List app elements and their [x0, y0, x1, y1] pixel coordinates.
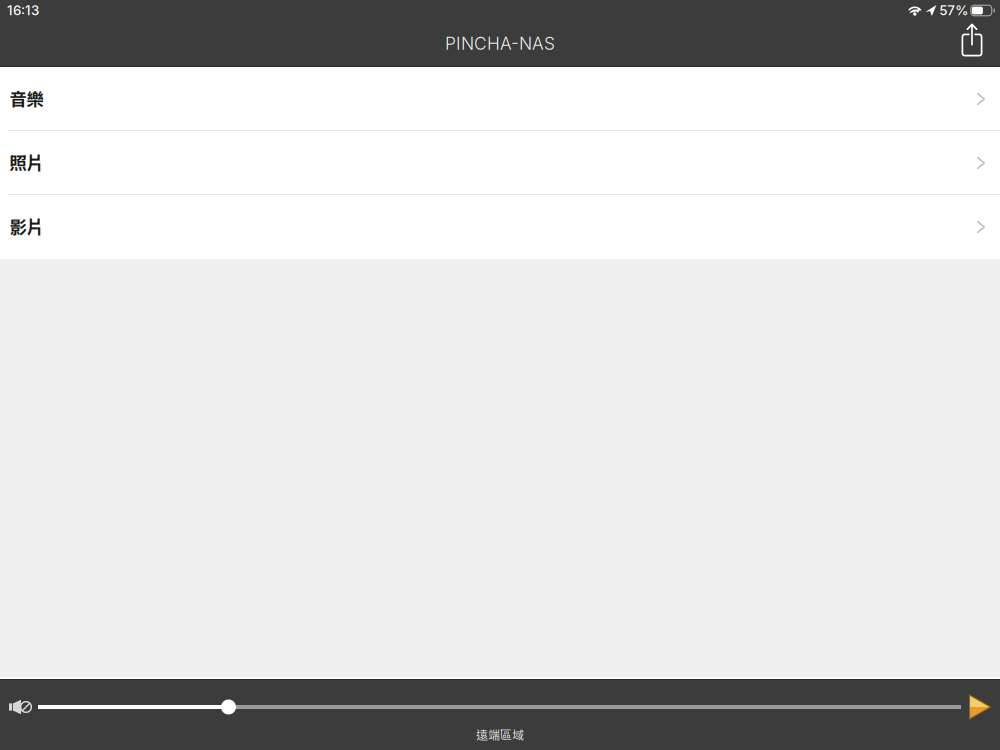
button[interactable]: Send — [964, 691, 996, 723]
button[interactable]: Share — [950, 21, 994, 66]
staticText: 16:13 — [7, 2, 39, 18]
staticText: 音樂 — [9, 85, 43, 111]
button[interactable]: Mute — [9, 699, 32, 715]
staticText: PINCHA-NAS — [445, 33, 555, 54]
staticText: 影片 — [9, 213, 43, 239]
button[interactable]: 照片 — [0, 131, 1000, 195]
staticText: 照片 — [9, 149, 43, 175]
button[interactable]: 音樂 — [0, 67, 1000, 131]
staticText: 57% — [939, 2, 968, 18]
button[interactable]: 影片 — [0, 195, 1000, 259]
staticText: 遠端區域 — [476, 726, 524, 743]
